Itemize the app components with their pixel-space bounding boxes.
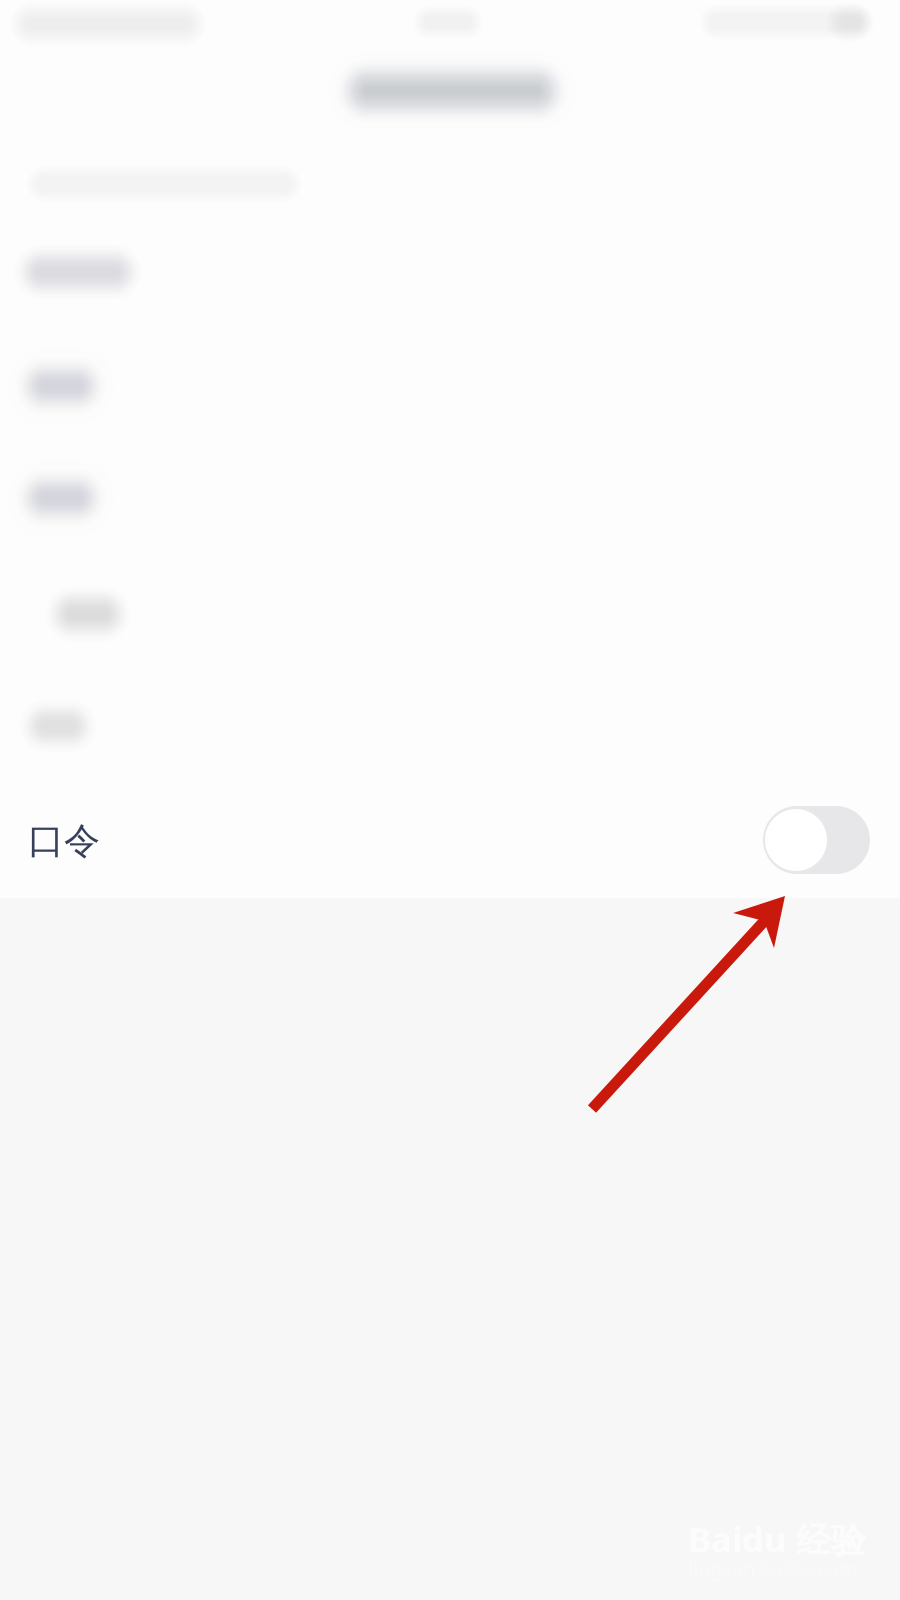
- button[interactable]: 口令 switch: [763, 806, 870, 874]
- button[interactable]: 口令: [28, 793, 248, 889]
- staticText: 口令: [28, 819, 100, 863]
